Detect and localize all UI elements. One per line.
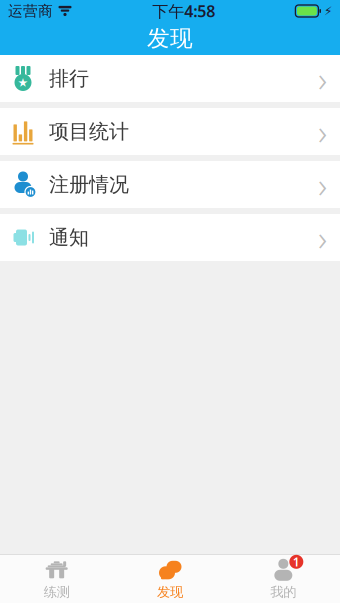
button[interactable]: 练测	[0, 555, 113, 603]
staticText: 注册情况	[49, 172, 129, 197]
staticText: 排行	[49, 66, 89, 91]
staticText: 我的	[270, 584, 296, 600]
staticText: 练测	[44, 584, 70, 600]
staticText: ›	[318, 108, 327, 154]
staticText: 运营商	[8, 2, 53, 20]
staticText: ⚡︎	[324, 4, 332, 18]
staticText: 通知	[49, 225, 89, 250]
staticText: 下午4:58	[152, 0, 215, 22]
button[interactable]: ★	[0, 55, 340, 102]
button[interactable]: 注册情况	[0, 161, 340, 208]
staticText: 1	[293, 554, 300, 570]
staticText: 发现	[147, 25, 193, 52]
staticText: ›	[318, 55, 327, 101]
staticText: ★	[17, 76, 28, 89]
button[interactable]: 发现	[113, 555, 227, 603]
staticText: ›	[318, 214, 327, 260]
button[interactable]: 1	[227, 555, 340, 603]
staticText: 发现	[157, 584, 183, 600]
staticText: 项目统计	[49, 119, 129, 144]
button[interactable]: 通知	[0, 214, 340, 261]
staticText: ›	[318, 161, 327, 207]
button[interactable]: 项目统计	[0, 108, 340, 155]
